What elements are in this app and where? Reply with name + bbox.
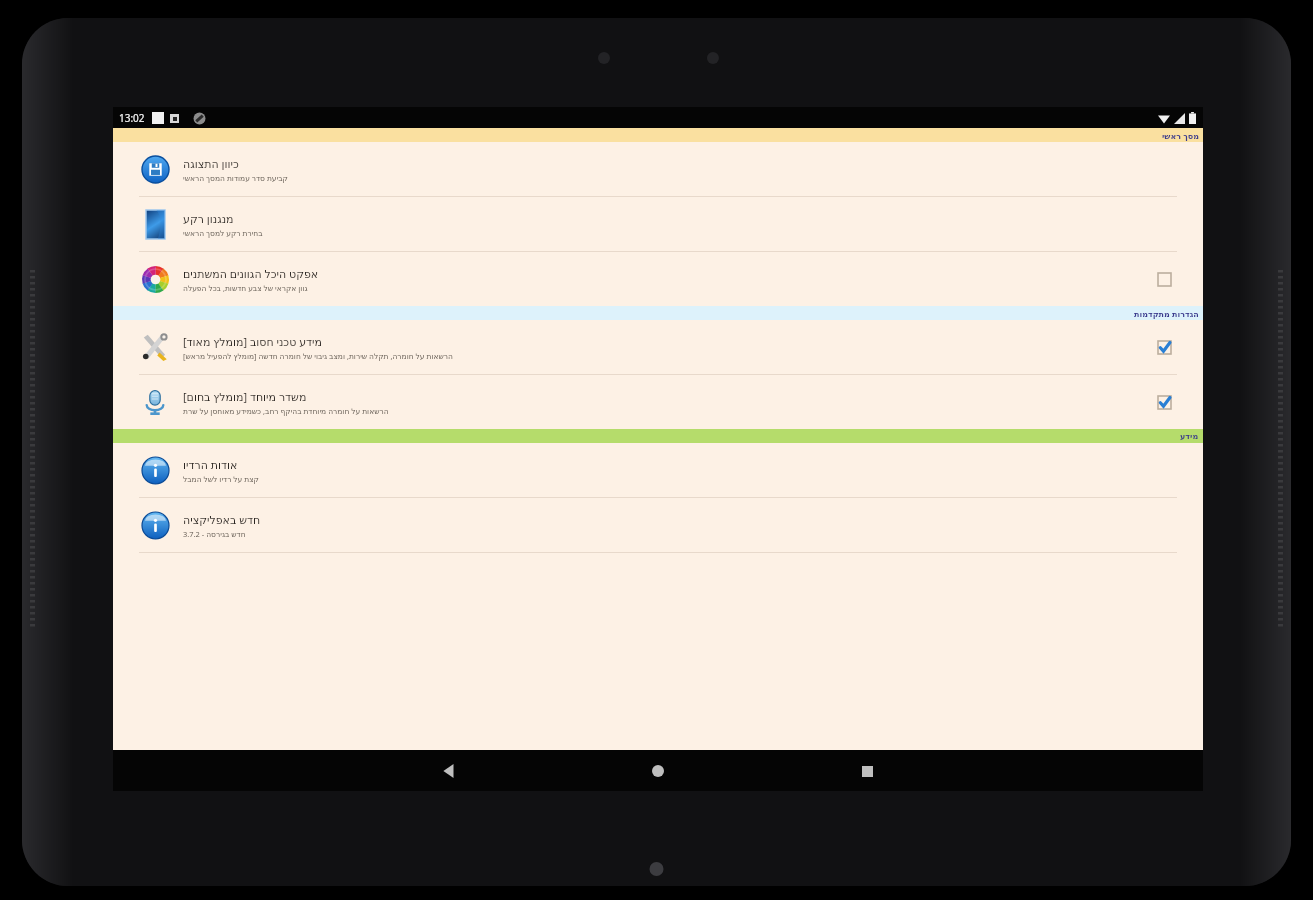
staticText: 3.7.2 - חדש בגירסה	[183, 529, 246, 539]
button[interactable]: מידע טכני חסוב [מומלץ מאוד]	[113, 320, 1203, 374]
button[interactable]: חדש באפליקציה	[113, 498, 1203, 552]
staticText: מסך ראשי	[1162, 130, 1199, 141]
staticText: מידע	[1180, 432, 1199, 441]
button[interactable]: אודות הרדיו	[113, 443, 1203, 497]
staticText: גוון אקראי של צבע חדשות, בכל הפעלה	[183, 283, 308, 293]
button[interactable]: Checked	[1151, 334, 1177, 360]
button[interactable]: כיוון התצוגה	[113, 142, 1203, 196]
button[interactable]: Unchecked	[1151, 266, 1177, 292]
button[interactable]: משדר מיוחד [מומלץ בחום]	[113, 375, 1203, 429]
staticText: מידע טכני חסוב [מומלץ מאוד]	[183, 334, 322, 349]
staticText: קביעת סדר עמודות המסך הראשי	[183, 173, 288, 183]
staticText: חדש באפליקציה	[183, 512, 261, 527]
staticText: משדר מיוחד [מומלץ בחום]	[183, 389, 307, 404]
staticText: הרשאות על חומרה, תקלה שירות, ומצב גיבוי …	[183, 351, 453, 361]
staticText: הגדרות מתקדמות	[1134, 308, 1199, 319]
button[interactable]: מנגנון רקע	[113, 197, 1203, 251]
button[interactable]: אפקט היכל הגוונים המשתנים	[113, 252, 1203, 306]
staticText: אפקט היכל הגוונים המשתנים	[183, 266, 319, 281]
staticText: בחירת רקע למסך הראשי	[183, 228, 263, 238]
button[interactable]: Checked	[1151, 389, 1177, 415]
button[interactable]: Home	[638, 751, 678, 791]
staticText: מנגנון רקע	[183, 211, 234, 226]
staticText: אודות הרדיו	[183, 457, 238, 472]
staticText: כיוון התצוגה	[183, 156, 239, 171]
staticText: 13:02	[119, 111, 145, 125]
staticText: קצת על רדיו לשל המבל	[183, 474, 259, 484]
staticText: הרשאות על חומרה מיוחדת בהיקף רחב, כשמידע…	[183, 406, 389, 416]
button[interactable]: Back	[429, 751, 469, 791]
button[interactable]: Recents	[847, 751, 887, 791]
